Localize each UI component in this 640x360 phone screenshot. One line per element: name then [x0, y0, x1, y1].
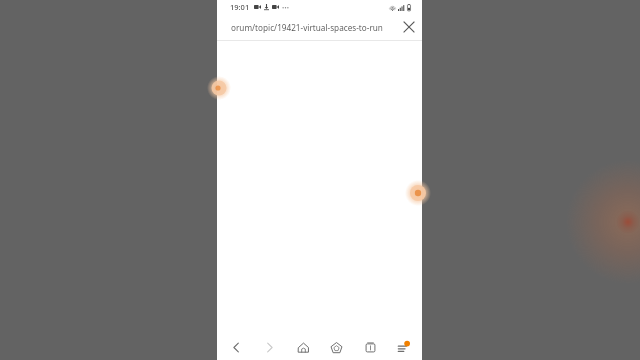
button[interactable]: Back	[221, 334, 251, 360]
staticText: orum/topic/19421-virtual-spaces-to-run	[231, 22, 383, 33]
button[interactable]: orum/topic/19421-virtual-spaces-to-run	[217, 14, 396, 40]
staticText: 19:01	[230, 2, 250, 12]
button[interactable]: Close	[396, 14, 422, 40]
button[interactable]: Tabs	[355, 334, 385, 360]
button[interactable]: Menu	[388, 334, 418, 360]
button[interactable]: Bookmarks	[321, 334, 351, 360]
button[interactable]: Home	[288, 334, 318, 360]
button[interactable]: Forward	[254, 334, 284, 360]
